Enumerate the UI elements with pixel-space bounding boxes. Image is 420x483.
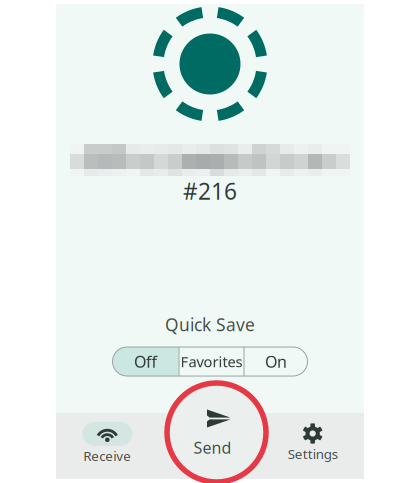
staticText: Receive <box>83 447 131 465</box>
staticText: Quick Save <box>165 313 255 336</box>
staticText: #216 <box>183 176 237 206</box>
staticText: Favorites <box>180 352 242 371</box>
button[interactable]: Send <box>159 413 261 479</box>
button[interactable]: Receive <box>56 413 159 479</box>
button[interactable]: Favorites <box>178 347 244 376</box>
staticText: Settings <box>288 445 338 463</box>
button[interactable]: Settings <box>261 413 364 479</box>
button[interactable]: On <box>244 347 307 376</box>
button[interactable]: Off <box>112 347 178 376</box>
staticText: Off <box>134 351 157 372</box>
staticText: On <box>265 351 287 372</box>
staticText: Send <box>193 437 231 458</box>
button[interactable]: Send <box>167 383 266 482</box>
